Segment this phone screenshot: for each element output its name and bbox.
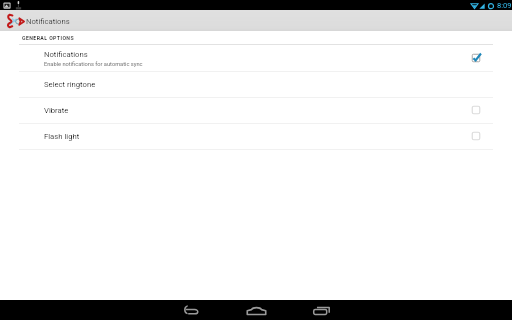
staticText: Notifications: [26, 17, 70, 26]
staticText: GENERAL OPTIONS: [22, 35, 75, 41]
button[interactable]: Select ringtone: [0, 71, 512, 97]
button[interactable]: Flash light: [0, 123, 512, 149]
button[interactable]: Back: [158, 300, 222, 320]
button[interactable]: Flash light: [470, 130, 482, 142]
button[interactable]: Notifications: [470, 52, 482, 64]
button[interactable]: Vibrate: [0, 97, 512, 123]
staticText: Select ringtone: [44, 80, 96, 89]
button[interactable]: Vibrate: [470, 104, 482, 116]
staticText: Enable notifications for automatic sync: [44, 61, 143, 68]
staticText: Vibrate: [44, 106, 69, 115]
staticText: 8:09: [497, 1, 512, 10]
staticText: Notifications: [44, 50, 88, 59]
button[interactable]: Home: [224, 300, 288, 320]
staticText: Flash light: [44, 132, 80, 141]
button[interactable]: Notifications: [0, 45, 512, 71]
button[interactable]: Recent apps: [290, 300, 354, 320]
button[interactable]: Notifications: [0, 10, 80, 31]
